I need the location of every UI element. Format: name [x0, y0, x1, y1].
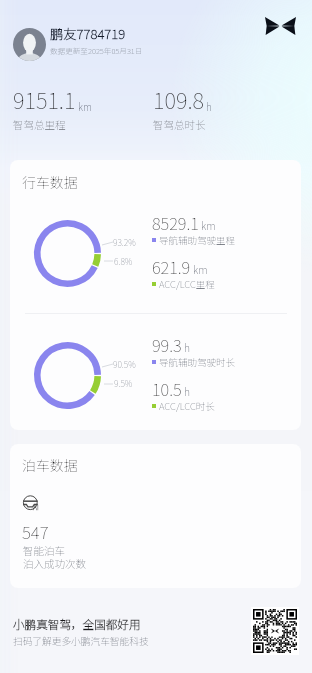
button[interactable]: Profile avatar [13, 28, 46, 61]
staticText: 8529.1 [152, 211, 199, 235]
staticText: h [184, 340, 191, 355]
staticText: h [206, 99, 212, 113]
staticText: 小鹏真智驾，全国都好用 [13, 616, 141, 633]
staticText: 导航辅助驾驶时长 [159, 355, 236, 369]
staticText: 数据更新至2025年05月31日 [50, 45, 143, 56]
button[interactable]: QR code [251, 607, 299, 655]
staticText: 621.9 [152, 255, 191, 279]
staticText: ACC/LCC里程 [159, 277, 215, 291]
staticText: AI [33, 502, 39, 512]
staticText: 93.2% [113, 236, 136, 248]
staticText: km [193, 262, 208, 277]
staticText: 智驾总里程 [13, 117, 66, 132]
staticText: 智驾总时长 [153, 117, 206, 132]
staticText: 泊车数据 [22, 455, 78, 475]
staticText: 导航辅助驾驶里程 [159, 233, 236, 247]
staticText: 扫码了解更多小鹏汽车智能科技 [13, 634, 149, 648]
staticText: 泊入成功次数 [23, 556, 86, 571]
staticText: 9.5% [114, 377, 133, 389]
staticText: 10.5 [152, 377, 182, 401]
button[interactable]: XPeng logo [262, 13, 298, 38]
staticText: 547 [22, 519, 49, 544]
staticText: 行车数据 [22, 172, 78, 192]
staticText: km [201, 218, 216, 233]
staticText: 智能泊车 [23, 543, 65, 558]
staticText: 109.8 [153, 83, 204, 115]
staticText: 鹏友7784719 [50, 24, 126, 43]
staticText: ACC/LCC时长 [159, 399, 215, 413]
staticText: h [184, 384, 191, 399]
staticText: km [78, 99, 92, 113]
staticText: 6.8% [114, 255, 133, 267]
staticText: 99.3 [152, 333, 182, 357]
staticText: 90.5% [113, 358, 136, 370]
staticText: 9151.1 [13, 83, 76, 115]
